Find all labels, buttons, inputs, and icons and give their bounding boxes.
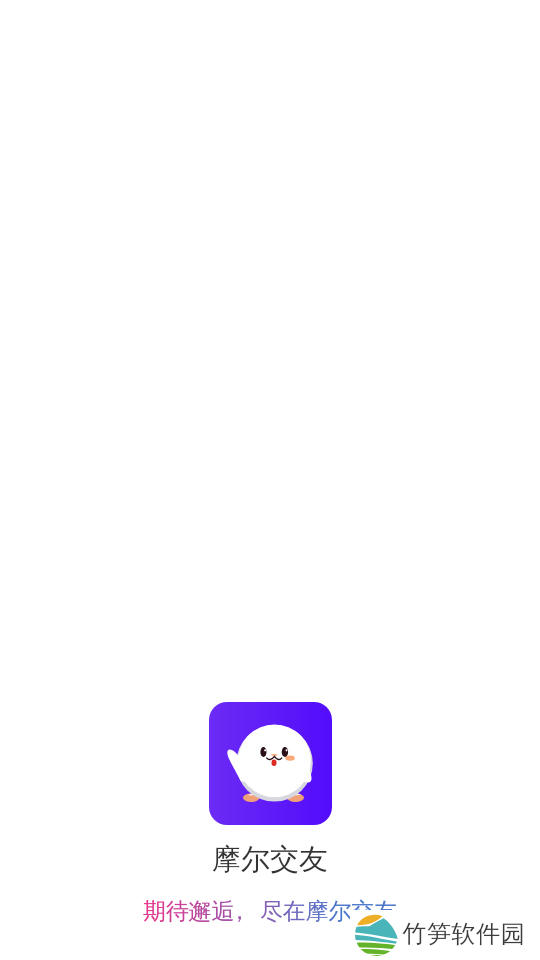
button[interactable] bbox=[209, 702, 332, 825]
staticText: 尽在摩尔交友 bbox=[260, 897, 397, 926]
staticText: 摩尔交友 bbox=[212, 841, 328, 878]
staticText: 竹笋软件园 bbox=[402, 919, 525, 949]
staticText: 期待邂逅 bbox=[143, 897, 235, 926]
staticText: ， bbox=[228, 897, 251, 926]
